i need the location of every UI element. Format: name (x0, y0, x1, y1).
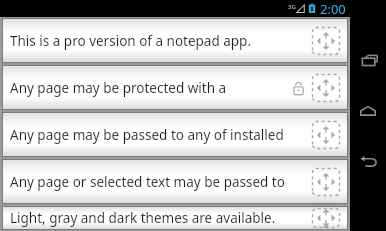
button[interactable]: Reorder (309, 71, 343, 105)
staticText: 3G (288, 3, 296, 11)
other: Protected with password (289, 79, 307, 97)
button[interactable]: Reorder (309, 24, 343, 58)
button[interactable]: Light, gray and dark themes are availabl… (3, 207, 347, 229)
staticText: 2:00 (320, 0, 346, 17)
button[interactable]: Reorder (309, 118, 343, 152)
button[interactable]: Back (350, 148, 386, 174)
button[interactable]: Recent apps (350, 48, 386, 74)
staticText: Light, gray and dark themes are availabl… (10, 209, 307, 227)
staticText: This is a pro version of a notepad app. (10, 32, 307, 50)
button[interactable]: Any page or selected text may be passed … (3, 160, 347, 203)
button[interactable]: Home (350, 98, 386, 124)
button[interactable]: Reorder (309, 207, 343, 229)
button[interactable]: Any page may be passed to any of install… (3, 113, 347, 156)
button[interactable]: Any page may be protected with a passwor… (3, 66, 347, 109)
button[interactable]: Reorder (309, 165, 343, 199)
staticText: Any page or selected text may be passed … (10, 173, 307, 191)
staticText: Any page may be passed to any of install… (10, 126, 307, 144)
button[interactable]: This is a pro version of a notepad app. (3, 19, 347, 62)
staticText: Any page may be protected with a passwor… (10, 79, 289, 97)
